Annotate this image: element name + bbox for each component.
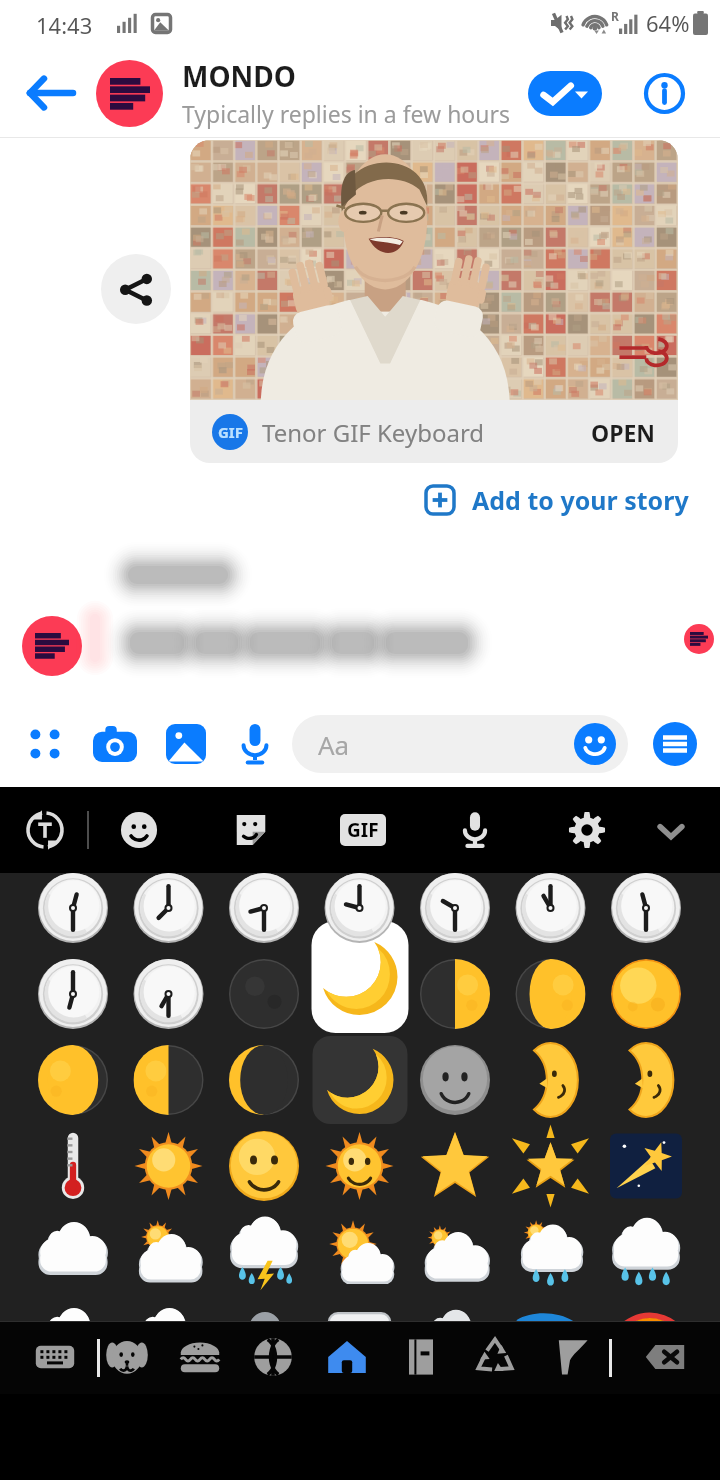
staticText: Typically replies in a few hours <box>182 98 511 129</box>
button[interactable]: Camera <box>85 714 145 774</box>
button[interactable]: GIF <box>335 802 391 858</box>
button[interactable]: Keyboard <box>28 1330 82 1384</box>
button[interactable]: Emoji <box>111 802 167 858</box>
staticText: MONDO <box>182 57 296 95</box>
button[interactable]: Back <box>2 48 98 138</box>
staticText: R <box>611 8 619 24</box>
button[interactable]: Emoji <box>574 723 616 765</box>
button[interactable]: More actions <box>15 714 75 774</box>
button[interactable]: Info <box>634 63 694 123</box>
button[interactable]: Menu <box>653 722 697 766</box>
button[interactable]: Activity <box>246 1330 300 1384</box>
button[interactable]: Voice <box>447 802 503 858</box>
staticText: GIF <box>218 422 243 442</box>
button[interactable]: Food and drink <box>173 1330 227 1384</box>
button[interactable]: GIF <box>190 400 678 463</box>
button[interactable]: Voice message <box>225 714 285 774</box>
staticText: 64% <box>646 8 690 38</box>
staticText: Aa <box>318 727 350 762</box>
staticText: Tenor GIF Keyboard <box>262 416 485 449</box>
button[interactable]: Animals and nature <box>100 1330 154 1384</box>
button[interactable]: Add to your story <box>424 478 689 522</box>
staticText: 14:43 <box>36 10 93 40</box>
button[interactable]: Delivered status <box>528 71 602 116</box>
staticText: Add to your story <box>472 483 689 517</box>
button[interactable]: Share <box>101 254 171 324</box>
button[interactable]: Backspace <box>638 1330 692 1384</box>
button[interactable]: Objects <box>394 1330 448 1384</box>
button[interactable]: Settings <box>559 802 615 858</box>
button[interactable]: Stickers <box>223 802 279 858</box>
button[interactable]: Symbols <box>468 1330 522 1384</box>
button[interactable]: Flags <box>543 1330 597 1384</box>
button[interactable]: Travel and places <box>320 1330 374 1384</box>
button[interactable]: Gallery <box>156 714 216 774</box>
button[interactable]: Aa <box>292 715 628 773</box>
staticText: GIF <box>347 817 379 843</box>
staticText: OPEN <box>591 417 656 448</box>
button[interactable]: Hide keyboard <box>643 802 699 858</box>
button[interactable]: Translate <box>17 802 73 858</box>
